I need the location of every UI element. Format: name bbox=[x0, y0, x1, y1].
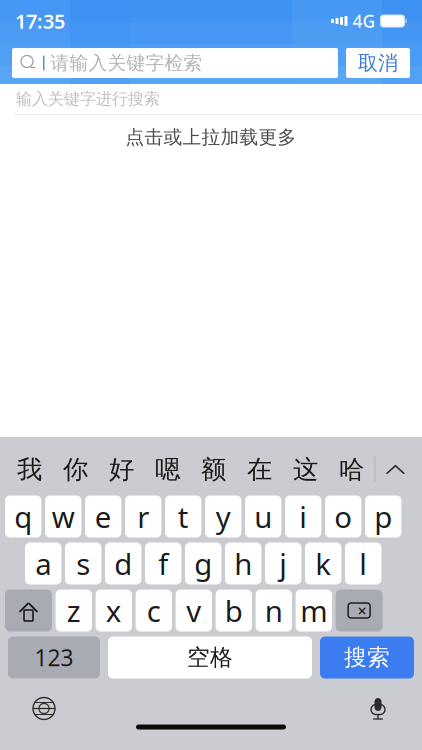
button[interactable]: 在 bbox=[237, 448, 283, 490]
staticText: e bbox=[95, 497, 112, 536]
button[interactable]: n bbox=[256, 589, 292, 631]
button[interactable]: 123 bbox=[8, 636, 100, 678]
staticText: l bbox=[359, 544, 367, 583]
staticText: 哈 bbox=[339, 454, 364, 485]
staticText: b bbox=[225, 591, 243, 630]
button[interactable]: z bbox=[56, 589, 92, 631]
staticText: y bbox=[216, 497, 231, 536]
button[interactable]: i bbox=[285, 495, 321, 537]
button[interactable]: y bbox=[205, 495, 241, 537]
button[interactable]: Delete bbox=[336, 589, 383, 631]
staticText: u bbox=[254, 497, 272, 536]
staticText: k bbox=[315, 544, 331, 583]
staticText: o bbox=[334, 497, 352, 536]
staticText: c bbox=[147, 591, 161, 630]
button[interactable]: m bbox=[296, 589, 332, 631]
button[interactable]: 额 bbox=[191, 448, 237, 490]
staticText: d bbox=[114, 544, 132, 583]
staticText: x bbox=[106, 591, 122, 630]
button[interactable]: g bbox=[185, 542, 221, 584]
staticText: q bbox=[14, 497, 32, 536]
staticText: h bbox=[234, 544, 252, 583]
staticText: t bbox=[178, 497, 189, 536]
staticText: g bbox=[194, 544, 212, 583]
button[interactable]: 我 bbox=[7, 448, 53, 490]
staticText: 点击或上拉加载更多 bbox=[125, 126, 296, 149]
staticText: j bbox=[279, 544, 287, 583]
staticText: × bbox=[358, 600, 367, 621]
button[interactable]: Expand candidates bbox=[375, 448, 415, 490]
staticText: p bbox=[374, 497, 392, 536]
staticText: s bbox=[76, 544, 90, 583]
button[interactable]: c bbox=[136, 589, 172, 631]
button[interactable]: f bbox=[145, 542, 181, 584]
button[interactable]: k bbox=[305, 542, 341, 584]
button[interactable]: b bbox=[216, 589, 252, 631]
staticText: m bbox=[300, 591, 327, 630]
staticText: r bbox=[137, 497, 149, 536]
staticText: z bbox=[67, 591, 81, 630]
button[interactable]: s bbox=[65, 542, 101, 584]
button[interactable]: e bbox=[85, 495, 121, 537]
button[interactable]: 这 bbox=[283, 448, 329, 490]
staticText: 你 bbox=[63, 454, 88, 485]
staticText: 空格 bbox=[187, 644, 233, 671]
button[interactable]: h bbox=[225, 542, 261, 584]
button[interactable]: l bbox=[345, 542, 381, 584]
button[interactable]: 搜索 bbox=[320, 636, 414, 678]
button[interactable]: 好 bbox=[99, 448, 145, 490]
button[interactable]: d bbox=[105, 542, 141, 584]
button[interactable]: p bbox=[365, 495, 401, 537]
staticText: 123 bbox=[34, 642, 73, 672]
button[interactable]: Shift bbox=[5, 589, 52, 631]
staticText: 请输入关键字检索 bbox=[50, 51, 202, 74]
staticText: 在 bbox=[247, 454, 272, 485]
staticText: f bbox=[158, 544, 168, 583]
staticText: 好 bbox=[109, 454, 134, 485]
button[interactable]: Dictation bbox=[356, 688, 400, 728]
staticText: 17:35 bbox=[15, 8, 65, 34]
button[interactable]: u bbox=[245, 495, 281, 537]
button[interactable]: o bbox=[325, 495, 361, 537]
staticText: 输入关键字进行搜索 bbox=[16, 89, 160, 109]
button[interactable]: t bbox=[165, 495, 201, 537]
button[interactable]: j bbox=[265, 542, 301, 584]
staticText: a bbox=[35, 544, 51, 583]
staticText: 取消 bbox=[358, 51, 398, 75]
button[interactable]: r bbox=[125, 495, 161, 537]
button[interactable]: x bbox=[96, 589, 132, 631]
staticText: v bbox=[186, 591, 201, 630]
staticText: n bbox=[265, 591, 283, 630]
button[interactable]: 取消 bbox=[346, 48, 410, 78]
staticText: i bbox=[299, 497, 307, 536]
button[interactable]: q bbox=[5, 495, 41, 537]
staticText: 嗯 bbox=[155, 454, 180, 485]
button[interactable]: Change keyboard bbox=[22, 688, 66, 728]
staticText: 搜索 bbox=[344, 644, 390, 671]
button[interactable]: w bbox=[45, 495, 81, 537]
button[interactable]: 空格 bbox=[108, 636, 312, 678]
staticText: w bbox=[52, 497, 75, 536]
staticText: 额 bbox=[201, 454, 226, 485]
staticText: 这 bbox=[293, 454, 318, 485]
button[interactable]: 你 bbox=[53, 448, 99, 490]
button[interactable]: v bbox=[176, 589, 212, 631]
button[interactable]: 哈 bbox=[329, 448, 375, 490]
staticText: 我 bbox=[17, 454, 42, 485]
staticText: 4G bbox=[352, 9, 375, 32]
button[interactable]: 嗯 bbox=[145, 448, 191, 490]
button[interactable]: a bbox=[25, 542, 61, 584]
